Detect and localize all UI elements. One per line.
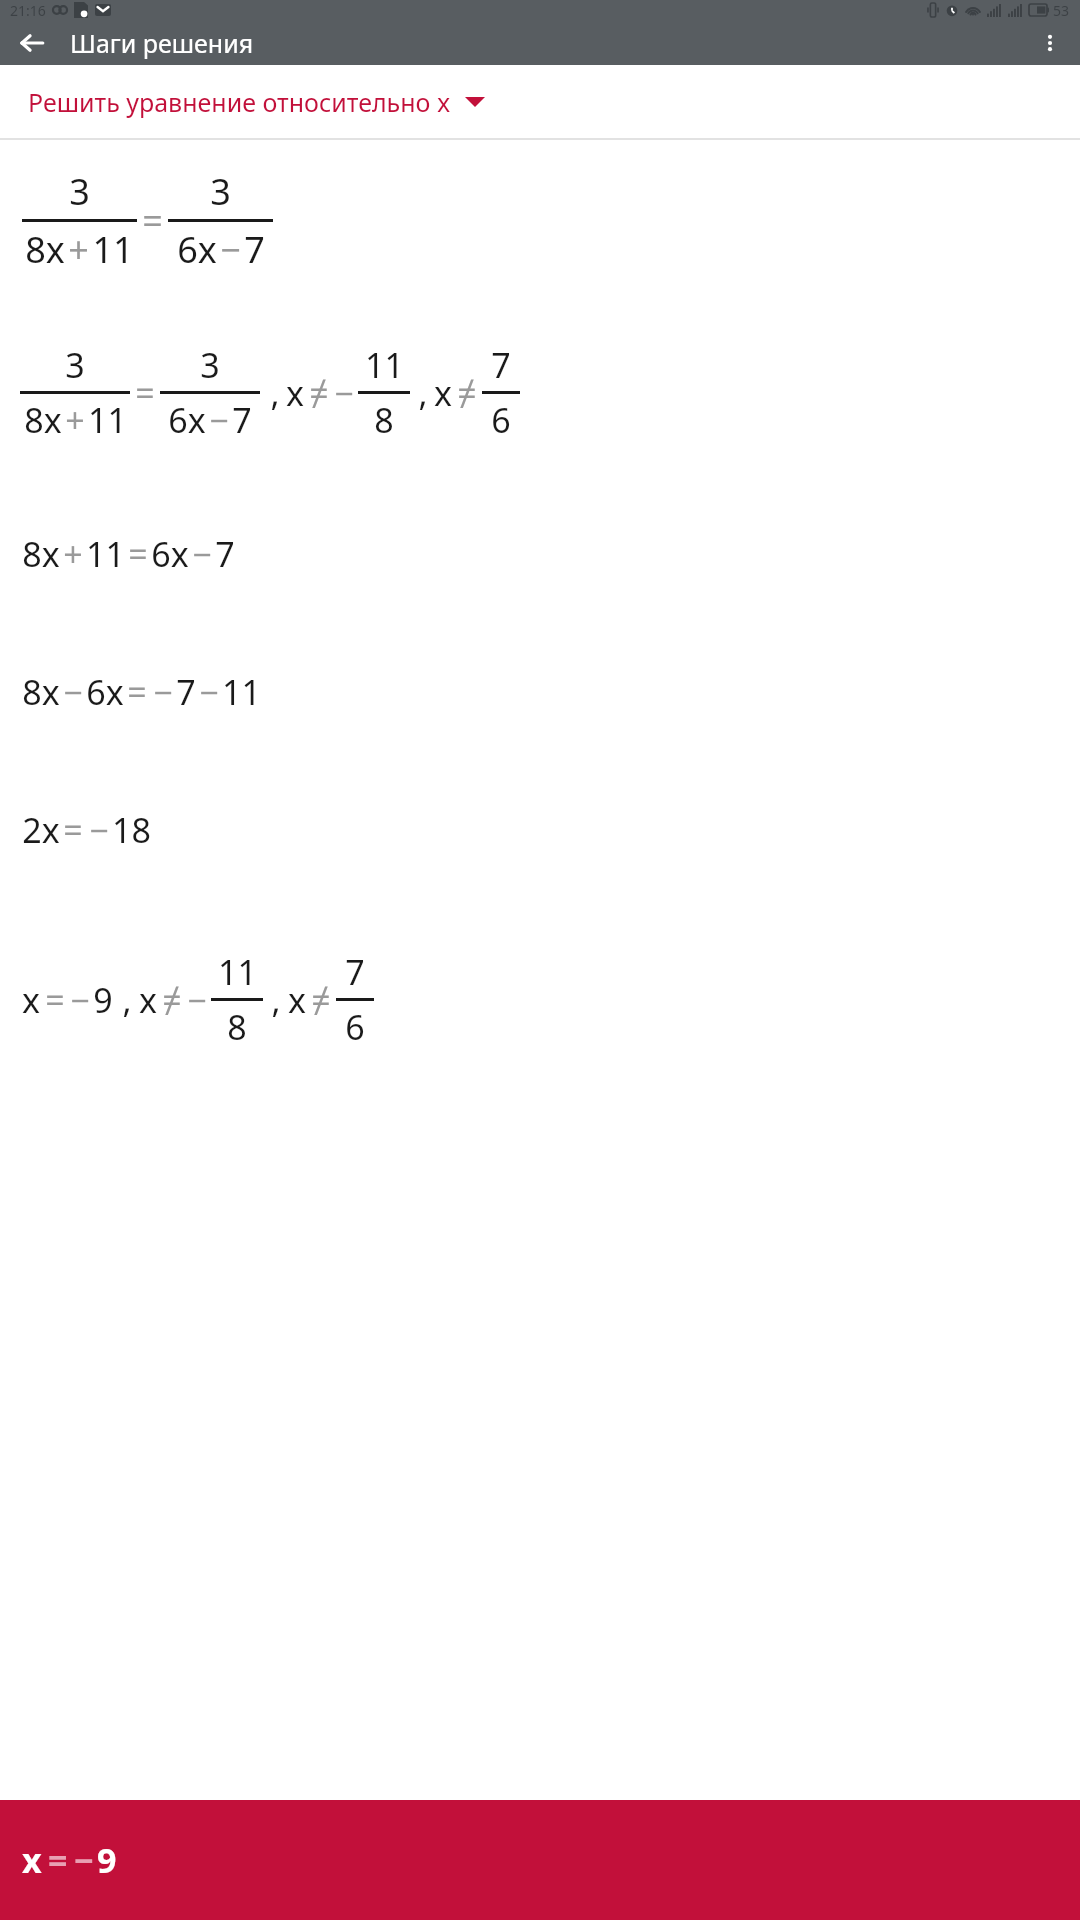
staticText: 18: [112, 807, 151, 853]
staticText: −: [187, 977, 207, 1023]
staticText: 8: [227, 1004, 247, 1050]
staticText: x: [139, 977, 157, 1023]
button[interactable]: Ещё: [1026, 20, 1074, 65]
staticText: 11: [222, 669, 261, 715]
staticText: 6: [345, 1004, 365, 1050]
staticText: ≠: [457, 370, 477, 416]
staticText: −: [70, 977, 90, 1023]
staticText: 8x: [22, 531, 60, 577]
staticText: −: [334, 370, 354, 416]
staticText: 21:16: [10, 1, 46, 20]
staticText: −: [74, 1837, 94, 1883]
staticText: 6x: [177, 225, 217, 274]
staticText: 6: [491, 397, 511, 443]
staticText: 8x: [24, 397, 62, 443]
staticText: 8: [374, 397, 394, 443]
staticText: 11: [92, 225, 134, 274]
staticText: x: [434, 370, 452, 416]
button[interactable]: Решить уравнение относительно x: [0, 65, 1080, 138]
staticText: 6x: [86, 669, 124, 715]
staticText: =: [63, 807, 83, 853]
staticText: 9: [97, 1837, 117, 1883]
staticText: 8x: [22, 669, 60, 715]
staticText: x: [286, 370, 304, 416]
staticText: −: [63, 669, 83, 715]
staticText: 6x: [151, 531, 189, 577]
staticText: 2x: [22, 807, 60, 853]
staticText: 7: [244, 225, 265, 274]
staticText: Шаги решения: [70, 26, 254, 60]
staticText: =: [128, 531, 148, 577]
staticText: 3: [210, 167, 231, 216]
staticText: +: [68, 225, 89, 274]
staticText: −: [209, 397, 229, 443]
staticText: ≠: [162, 977, 182, 1023]
staticText: ≠: [311, 977, 331, 1023]
staticText: 8x: [25, 225, 65, 274]
staticText: =: [127, 669, 147, 715]
staticText: 7: [232, 397, 252, 443]
staticText: 7: [176, 669, 196, 715]
staticText: −: [192, 531, 212, 577]
staticText: 53: [1053, 1, 1070, 20]
button[interactable]: Назад: [8, 20, 56, 65]
staticText: ,: [122, 977, 132, 1023]
staticText: ≠: [309, 370, 329, 416]
staticText: 11: [86, 531, 125, 577]
staticText: −: [89, 807, 109, 853]
staticText: 9: [93, 977, 113, 1023]
staticText: 6x: [168, 397, 206, 443]
staticText: Решить уравнение относительно x: [28, 85, 451, 119]
staticText: 11: [365, 342, 404, 388]
staticText: 11: [88, 397, 127, 443]
staticText: 7: [491, 342, 511, 388]
staticText: =: [142, 196, 163, 245]
staticText: 3: [200, 342, 220, 388]
staticText: 11: [218, 949, 257, 995]
staticText: ,: [418, 370, 428, 416]
staticText: ,: [271, 977, 281, 1023]
staticText: x: [22, 977, 40, 1023]
staticText: =: [135, 370, 155, 416]
staticText: 3: [69, 167, 90, 216]
staticText: 7: [215, 531, 235, 577]
staticText: =: [45, 977, 65, 1023]
staticText: −: [153, 669, 173, 715]
staticText: =: [48, 1837, 68, 1883]
staticText: x: [22, 1837, 42, 1883]
staticText: −: [220, 225, 241, 274]
staticText: +: [63, 531, 83, 577]
staticText: x: [288, 977, 306, 1023]
staticText: 7: [345, 949, 365, 995]
staticText: ,: [270, 370, 280, 416]
staticText: −: [199, 669, 219, 715]
staticText: +: [65, 397, 85, 443]
button[interactable]: x: [0, 1800, 1080, 1920]
staticText: 3: [65, 342, 85, 388]
